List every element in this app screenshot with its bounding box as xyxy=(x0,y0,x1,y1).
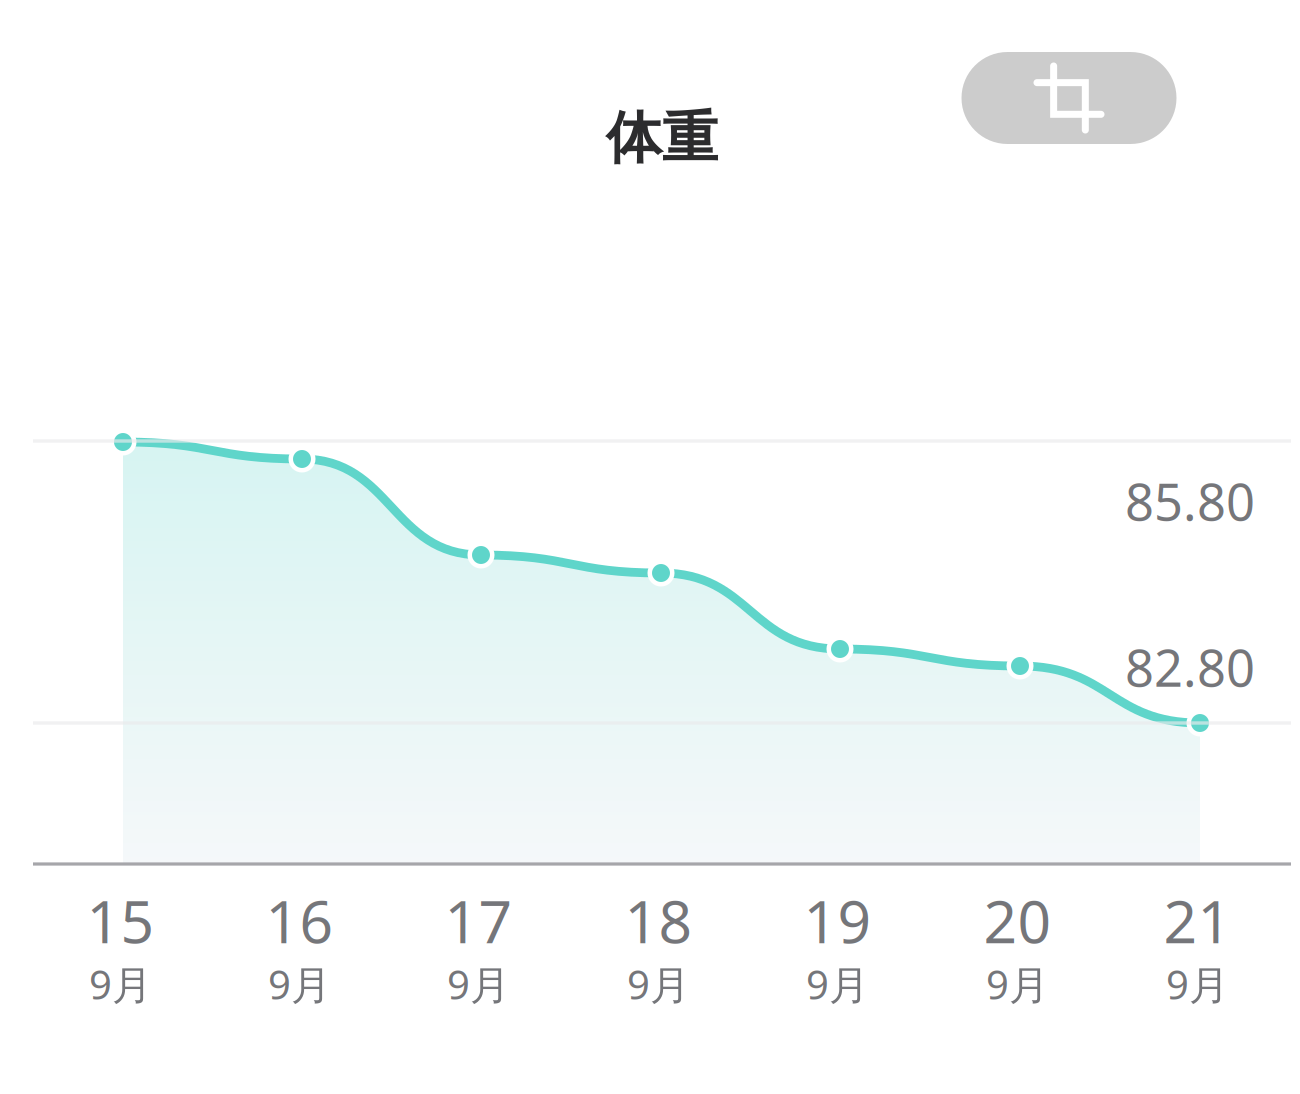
staticText: 20 xyxy=(983,881,1051,959)
staticText: 9月 xyxy=(627,957,690,1010)
staticText: 16 xyxy=(265,881,333,959)
staticText: 9月 xyxy=(268,957,331,1010)
staticText: 9月 xyxy=(1166,957,1229,1010)
staticText: 21 xyxy=(1163,881,1231,959)
staticText: 18 xyxy=(624,881,692,959)
staticText: 9月 xyxy=(806,957,869,1010)
staticText: 85.80 xyxy=(1125,467,1255,535)
staticText: 17 xyxy=(444,881,512,959)
staticText: 9月 xyxy=(447,957,510,1010)
staticText: 15 xyxy=(86,881,154,959)
staticText: 9月 xyxy=(89,957,152,1010)
staticText: 体重 xyxy=(606,104,718,172)
button[interactable]: Crop range xyxy=(961,52,1176,144)
staticText: 9月 xyxy=(986,957,1049,1010)
staticText: 19 xyxy=(803,881,871,959)
staticText: 82.80 xyxy=(1125,633,1255,701)
